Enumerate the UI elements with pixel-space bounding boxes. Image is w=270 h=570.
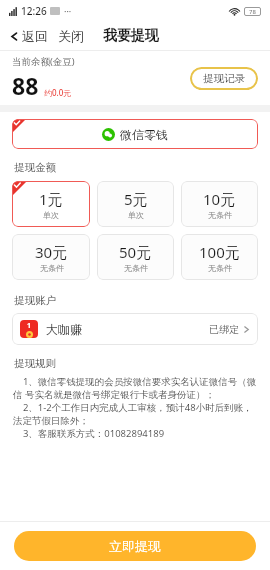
button[interactable]: 立即提现 (14, 531, 256, 561)
button[interactable]: 100元 (181, 234, 258, 280)
button[interactable]: 50元 (97, 234, 174, 280)
staticText: 1 (27, 321, 32, 331)
staticText: 提现金额 (14, 161, 56, 174)
staticText: 50元 (119, 242, 152, 262)
staticText: 微信零钱 (120, 127, 168, 142)
staticText: 100元 (199, 242, 240, 262)
staticText: 88 (12, 70, 39, 101)
button[interactable]: 5元 (97, 181, 174, 227)
staticText: 单次 (128, 210, 144, 220)
staticText: 12:26 (21, 4, 47, 18)
staticText: 1元 (39, 189, 63, 209)
button[interactable]: 微信零钱 (12, 119, 258, 149)
staticText: 返回 (22, 28, 48, 44)
staticText: 关闭 (58, 28, 84, 44)
staticText: 当前余额(金豆) (12, 55, 75, 68)
staticText: 3、客服联系方式：01082894189 (13, 427, 165, 440)
button[interactable]: 10元 (181, 181, 258, 227)
staticText: ··· (64, 5, 72, 17)
staticText: 无条件 (40, 263, 64, 273)
staticText: 提现账户 (14, 294, 56, 307)
staticText: 单次 (43, 210, 59, 220)
staticText: 无条件 (124, 263, 148, 273)
button[interactable]: 关闭 (56, 26, 86, 46)
staticText: 大咖赚 (46, 322, 82, 337)
staticText: 10元 (203, 189, 236, 209)
staticText: 提现规则 (14, 357, 56, 370)
staticText: 已绑定 (209, 323, 239, 336)
staticText: 提现记录 (203, 72, 245, 85)
other: Open account (243, 326, 250, 333)
staticText: 78 (249, 8, 256, 16)
button[interactable]: 1元 (12, 181, 90, 227)
staticText: 无条件 (208, 263, 232, 273)
staticText: 2、1-2个工作日内完成人工审核，预计48小时后到账，法定节假日除外； (13, 401, 257, 427)
button[interactable]: 30元 (12, 234, 90, 280)
staticText: 我要提现 (103, 27, 159, 45)
button[interactable]: 提现记录 (190, 67, 258, 90)
staticText: 无条件 (208, 210, 232, 220)
staticText: 5元 (124, 189, 148, 209)
button[interactable]: 1 (12, 313, 258, 345)
staticText: 立即提现 (109, 538, 161, 554)
staticText: 30元 (35, 242, 68, 262)
staticText: 约0.0元 (44, 87, 72, 98)
button[interactable]: 返回 (8, 26, 50, 46)
staticText: 1、微信零钱提现的会员按微信要求实名认证微信号（微信 号实名就是微信号绑定银行卡… (13, 375, 257, 401)
